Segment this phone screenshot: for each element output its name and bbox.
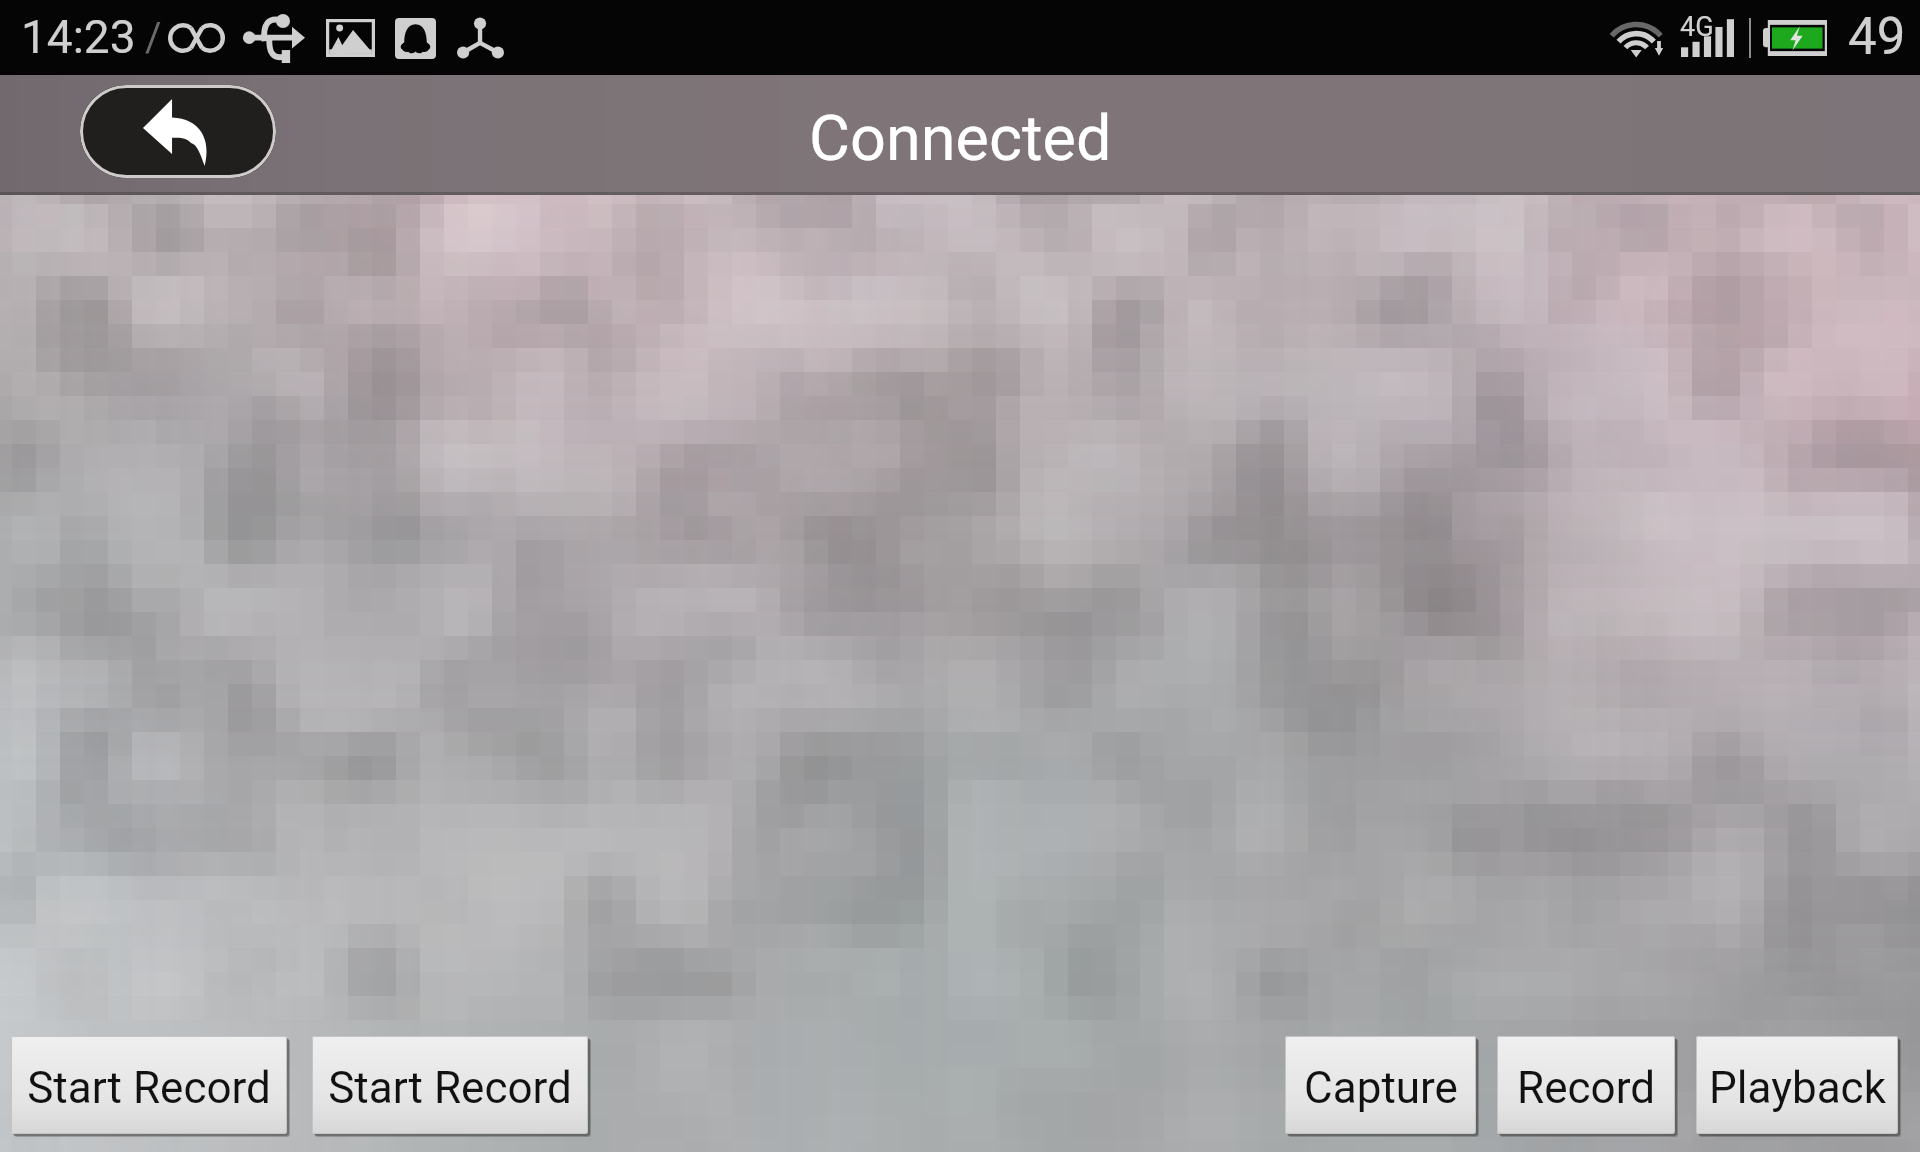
staticText: Start Record [328,1062,572,1114]
staticText: Record [1517,1062,1655,1114]
staticText: Start Record [27,1062,271,1114]
button[interactable]: Back [80,85,276,178]
staticText: / [145,14,162,61]
button[interactable]: Capture [1285,1036,1476,1134]
button[interactable]: Playback [1696,1036,1898,1134]
staticText: 49 [1848,7,1906,67]
staticText: 14:23 [21,10,136,64]
button[interactable]: Start Record [312,1036,588,1134]
button[interactable]: Start Record [11,1036,287,1134]
staticText: 4G [1680,11,1714,43]
staticText: Playback [1709,1062,1886,1114]
button[interactable]: Record [1497,1036,1675,1134]
staticText: Capture [1304,1062,1458,1114]
staticText: Connected [809,102,1112,176]
